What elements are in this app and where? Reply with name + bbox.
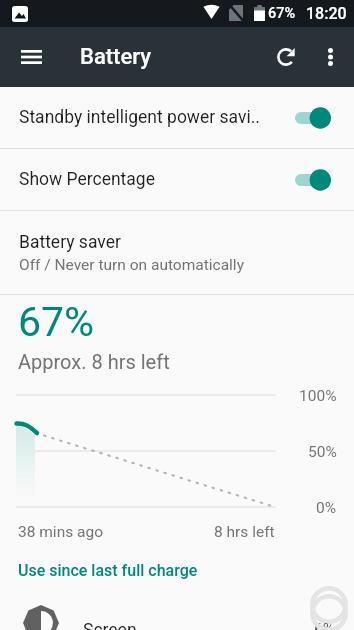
- staticText: 0%: [316, 499, 337, 517]
- button[interactable]: Standby intelligent power savi..: [0, 87, 354, 148]
- staticText: Battery saver: [19, 232, 121, 253]
- staticText: Screen: [83, 620, 137, 630]
- staticText: 67%: [268, 5, 296, 22]
- staticText: 100%: [299, 387, 337, 405]
- staticText: Battery: [80, 44, 151, 70]
- staticText: 6%: [314, 620, 335, 630]
- button[interactable]: Screen: [0, 603, 354, 630]
- staticText: Approx. 8 hrs left: [18, 350, 170, 373]
- button[interactable]: Show Percentage: [0, 149, 354, 210]
- staticText: 38 mins ago: [18, 523, 104, 541]
- staticText: Show Percentage: [19, 169, 289, 190]
- staticText: Off / Never turn on automatically: [19, 256, 244, 274]
- staticText: Use since last full charge: [18, 561, 198, 580]
- button[interactable]: Refresh: [264, 35, 308, 79]
- button[interactable]: Open navigation drawer: [11, 37, 51, 77]
- staticText: Standby intelligent power savi..: [19, 107, 289, 128]
- button[interactable]: Battery saver: [0, 211, 354, 294]
- staticText: 8 hrs left: [214, 523, 275, 541]
- staticText: 67%: [18, 298, 95, 346]
- staticText: 50%: [308, 443, 337, 461]
- button[interactable]: Use since last full charge: [0, 553, 354, 587]
- staticText: 18:20: [306, 4, 347, 23]
- button[interactable]: More options: [308, 35, 352, 79]
